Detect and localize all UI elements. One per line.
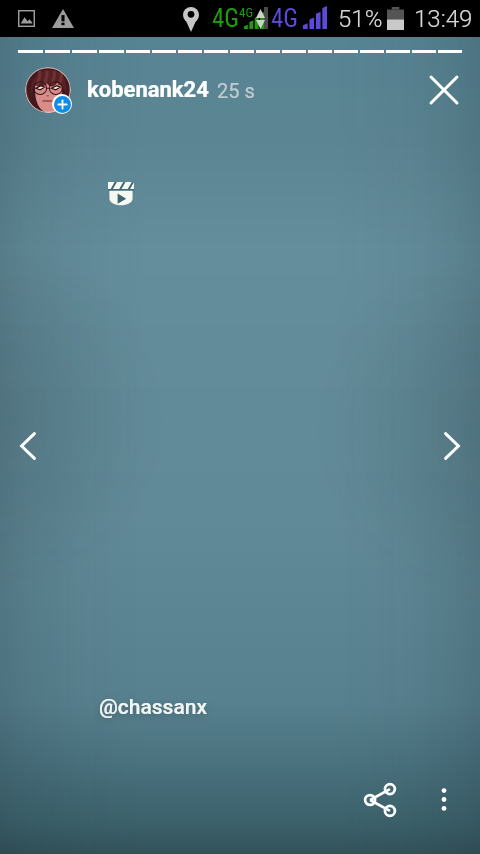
staticText: 13:49 [414, 5, 473, 33]
staticText: @chassanx [99, 695, 207, 720]
staticText: 4G [212, 4, 240, 33]
button[interactable]: Share [356, 776, 404, 824]
staticText: 51% [338, 5, 383, 33]
staticText: 25 s [217, 79, 255, 102]
button[interactable]: Next story [424, 418, 480, 474]
staticText: kobenank24 [87, 77, 209, 103]
staticText: 4G [239, 5, 254, 20]
button[interactable]: Close [420, 66, 468, 114]
staticText: 4G [271, 4, 299, 33]
button[interactable] [20, 64, 270, 116]
button[interactable]: Previous story [0, 418, 56, 474]
button[interactable]: More options [420, 775, 468, 823]
